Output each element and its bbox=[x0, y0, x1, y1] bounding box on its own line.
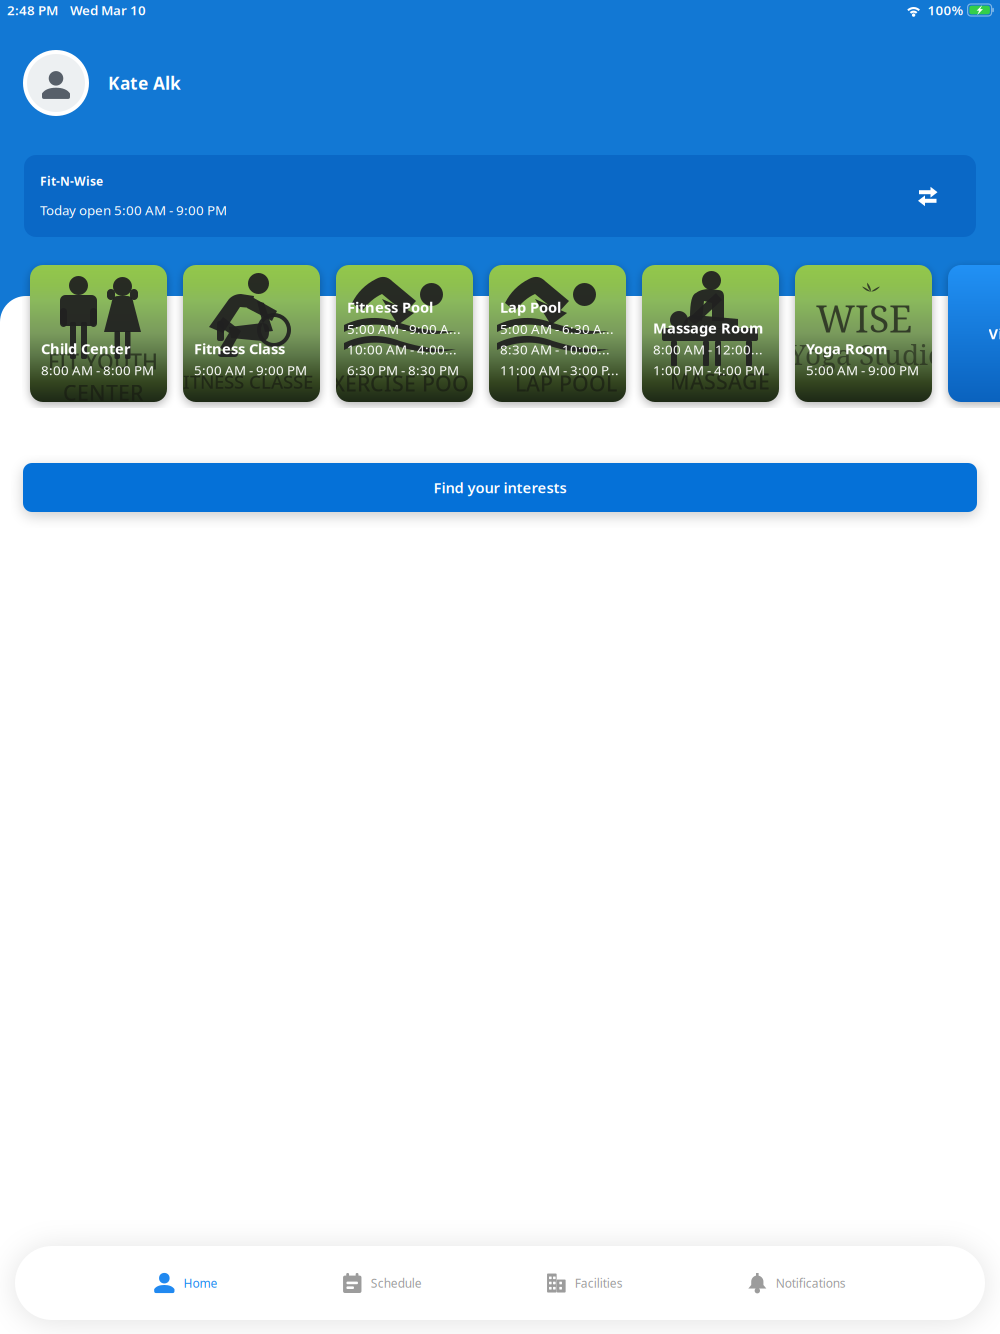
staticText: 8:30 AM - 10:00... bbox=[500, 341, 610, 358]
staticText: Yoga Studio bbox=[789, 335, 944, 373]
staticText: Lap Pool bbox=[500, 297, 561, 317]
staticText: Notifications bbox=[776, 1275, 846, 1291]
staticText: 5:00 AM - 6:30 A... bbox=[500, 320, 614, 338]
staticText: FIT YOUTH bbox=[48, 347, 158, 375]
staticText: MASSAGE bbox=[670, 367, 770, 395]
staticText: Schedule bbox=[371, 1275, 422, 1291]
staticText: 8:00 AM - 12:00... bbox=[653, 341, 763, 358]
staticText: 8:00 AM - 8:00 PM bbox=[41, 361, 154, 379]
staticText: Fitness Class bbox=[194, 339, 285, 358]
staticText: Home bbox=[183, 1275, 217, 1291]
staticText: 5:00 AM - 9:00 PM bbox=[806, 361, 919, 379]
staticText: Facilities bbox=[575, 1275, 623, 1291]
staticText: View all bbox=[988, 324, 1000, 343]
button[interactable]: LAP POOL bbox=[489, 265, 626, 402]
button[interactable]: Find your interests bbox=[23, 463, 977, 512]
staticText: Child Center bbox=[41, 339, 131, 358]
button[interactable]: FIT YOUTH bbox=[30, 265, 167, 402]
button[interactable]: Facilities bbox=[545, 1246, 625, 1320]
button[interactable]: Schedule bbox=[341, 1246, 424, 1320]
button[interactable]: Yoga Studio bbox=[795, 265, 932, 402]
button[interactable]: XERCISE POO bbox=[336, 265, 473, 402]
staticText: 100% bbox=[928, 1, 964, 19]
staticText: 11:00 AM - 3:00 P... bbox=[500, 361, 619, 379]
staticText: XERCISE POO bbox=[332, 369, 469, 397]
staticText: 2:48 PM bbox=[7, 1, 58, 19]
staticText: 6:30 PM - 8:30 PM bbox=[347, 361, 459, 379]
staticText: WISE bbox=[816, 293, 912, 343]
staticText: Yoga Room bbox=[806, 339, 887, 358]
staticText: 10:00 AM - 4:00... bbox=[347, 341, 457, 358]
staticText: CENTER bbox=[63, 378, 143, 407]
staticText: 1:00 PM - 4:00 PM bbox=[653, 361, 765, 379]
staticText: Today open 5:00 AM - 9:00 PM bbox=[40, 201, 227, 219]
staticText: Massage Room bbox=[653, 318, 763, 338]
button[interactable]: Home bbox=[152, 1246, 219, 1320]
button[interactable]: ITNESS CLASSE bbox=[183, 265, 320, 402]
staticText: Wed Mar 10 bbox=[70, 1, 146, 19]
staticText: Fit-N-Wise bbox=[40, 173, 103, 189]
staticText: 5:00 AM - 9:00 A... bbox=[347, 320, 461, 338]
button[interactable]: Notifications bbox=[746, 1246, 848, 1320]
staticText: Kate Alk bbox=[108, 71, 181, 94]
staticText: LAP POOL bbox=[515, 369, 617, 397]
staticText: ITNESS CLASSE bbox=[183, 369, 313, 394]
button[interactable]: Switch location bbox=[918, 185, 938, 207]
button[interactable]: View all bbox=[948, 265, 1000, 402]
staticText: Fitness Pool bbox=[347, 297, 433, 317]
staticText: Find your interests bbox=[433, 478, 566, 497]
staticText: 5:00 AM - 9:00 PM bbox=[194, 361, 307, 379]
button[interactable]: MASSAGE bbox=[642, 265, 779, 402]
